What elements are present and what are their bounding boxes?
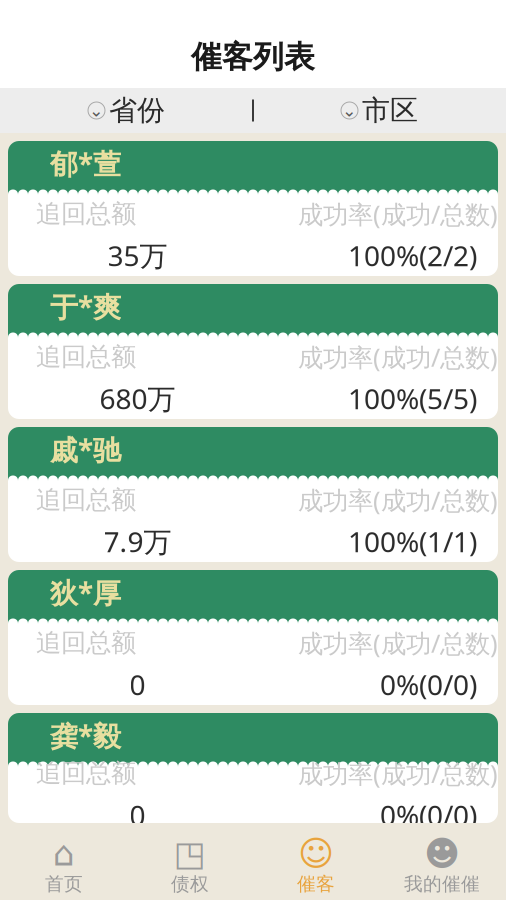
- staticText: 我的催催: [404, 872, 480, 895]
- staticText: ◳: [173, 834, 206, 873]
- staticText: 680万: [99, 380, 175, 417]
- staticText: 0%(0/0): [380, 796, 477, 833]
- button[interactable]: 戚*驰: [8, 427, 498, 562]
- staticText: 追回总额: [36, 627, 136, 658]
- staticText: 0: [129, 666, 145, 703]
- staticText: ⌄: [89, 101, 104, 120]
- button[interactable]: ⌂: [1, 836, 127, 898]
- staticText: 追回总额: [36, 484, 136, 515]
- button[interactable]: ◳: [127, 836, 253, 898]
- button[interactable]: ⌄: [0, 88, 253, 133]
- staticText: 成功率(成功/总数): [298, 757, 498, 790]
- button[interactable]: 郁*萱: [8, 141, 498, 276]
- staticText: 追回总额: [36, 341, 136, 372]
- staticText: 0: [129, 796, 145, 833]
- staticText: 债权: [171, 872, 209, 895]
- button[interactable]: ☻: [379, 836, 505, 898]
- button[interactable]: ⌄: [253, 88, 506, 133]
- staticText: 7.9万: [103, 523, 171, 560]
- staticText: 成功率(成功/总数): [298, 197, 498, 231]
- staticText: 郁*萱: [50, 145, 121, 182]
- staticText: 催客: [297, 872, 335, 895]
- staticText: 成功率(成功/总数): [298, 340, 498, 374]
- staticText: 戚*驰: [50, 431, 121, 468]
- button[interactable]: 龚*毅: [8, 713, 498, 823]
- staticText: 追回总额: [36, 758, 136, 789]
- staticText: 100%(5/5): [348, 380, 477, 417]
- button[interactable]: 于*爽: [8, 284, 498, 419]
- staticText: 100%(2/2): [348, 237, 477, 274]
- staticText: 成功率(成功/总数): [298, 626, 498, 660]
- staticText: 成功率(成功/总数): [298, 483, 498, 517]
- staticText: 100%(1/1): [348, 523, 477, 560]
- staticText: 市区: [362, 93, 418, 128]
- staticText: 追回总额: [36, 198, 136, 229]
- staticText: ☻: [424, 834, 460, 873]
- staticText: 35万: [107, 237, 167, 274]
- staticText: 首页: [45, 872, 83, 895]
- button[interactable]: ☺: [253, 836, 379, 898]
- staticText: 省份: [109, 93, 165, 128]
- staticText: ⌂: [53, 834, 75, 873]
- staticText: 狄*厚: [50, 574, 121, 611]
- staticText: 于*爽: [50, 288, 121, 325]
- staticText: ⌄: [342, 101, 357, 120]
- staticText: 催客列表: [191, 38, 315, 76]
- staticText: 0%(0/0): [380, 666, 477, 703]
- staticText: ☺: [298, 834, 334, 873]
- button[interactable]: 狄*厚: [8, 570, 498, 705]
- staticText: 龚*毅: [50, 717, 121, 754]
